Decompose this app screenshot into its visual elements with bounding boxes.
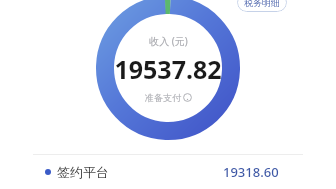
- button[interactable]: 准备支付: [145, 92, 192, 103]
- staticText: 签约平台: [57, 164, 109, 180]
- button[interactable]: 签约平台: [0, 155, 336, 188]
- staticText: 19537.82: [114, 52, 222, 86]
- staticText: 19318.60: [223, 163, 279, 181]
- staticText: 收入 (元): [149, 34, 188, 48]
- staticText: 税务明细: [244, 0, 280, 8]
- staticText: 准备支付: [145, 92, 181, 103]
- button[interactable]: 税务明细: [237, 0, 287, 12]
